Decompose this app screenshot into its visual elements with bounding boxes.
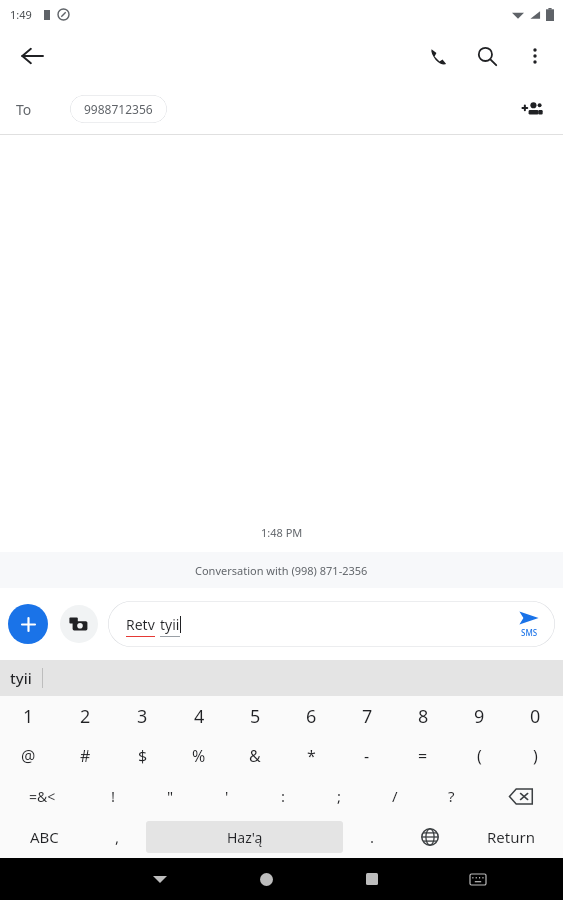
- button[interactable]: Recents: [319, 858, 425, 900]
- staticText: To: [16, 100, 32, 119]
- staticText: Return: [487, 827, 535, 847]
- button[interactable]: More options: [511, 32, 559, 80]
- staticText: Retv: [126, 615, 155, 634]
- staticText: /: [392, 786, 398, 806]
- button[interactable]: Search: [463, 32, 511, 80]
- staticText: SMS: [521, 627, 538, 638]
- staticText: ): [533, 745, 538, 767]
- button[interactable]: Return: [459, 816, 563, 858]
- button[interactable]: 6: [283, 696, 339, 736]
- button[interactable]: !: [85, 776, 142, 816]
- staticText: Haz'ą: [227, 828, 263, 847]
- staticText: *: [307, 745, 316, 767]
- button[interactable]: %: [171, 736, 227, 776]
- staticText: 1:48 PM: [261, 525, 303, 540]
- button[interactable]: Retv: [108, 601, 555, 647]
- staticText: #: [80, 745, 91, 767]
- button[interactable]: $: [114, 736, 171, 776]
- button[interactable]: /: [367, 776, 423, 816]
- staticText: $: [138, 745, 148, 767]
- button[interactable]: (: [451, 736, 507, 776]
- staticText: :: [281, 786, 286, 806]
- button[interactable]: Add people: [511, 87, 555, 131]
- staticText: 9: [474, 704, 485, 729]
- staticText: @: [21, 745, 36, 767]
- button[interactable]: Add attachment: [8, 604, 48, 644]
- button[interactable]: ABC: [0, 816, 88, 858]
- button[interactable]: ?: [423, 776, 479, 816]
- button[interactable]: 0: [507, 696, 563, 736]
- button[interactable]: .: [343, 816, 401, 858]
- button[interactable]: =&<: [0, 776, 85, 816]
- button[interactable]: Home: [213, 858, 319, 900]
- button[interactable]: 8: [395, 696, 451, 736]
- button[interactable]: *: [283, 736, 339, 776]
- button[interactable]: 4: [171, 696, 227, 736]
- staticText: !: [111, 786, 116, 806]
- button[interactable]: =: [395, 736, 451, 776]
- staticText: (: [477, 745, 482, 767]
- button[interactable]: ': [199, 776, 255, 816]
- staticText: ABC: [30, 827, 59, 847]
- button[interactable]: 9: [451, 696, 507, 736]
- staticText: 9988712356: [84, 101, 153, 117]
- staticText: Conversation with (998) 871-2356: [195, 563, 368, 578]
- staticText: .: [370, 827, 375, 847]
- button[interactable]: Send SMS: [519, 610, 539, 638]
- staticText: 5: [250, 704, 261, 729]
- button[interactable]: Backspace: [479, 776, 563, 816]
- staticText: 6: [306, 704, 317, 729]
- staticText: =&<: [29, 787, 56, 806]
- button[interactable]: ): [507, 736, 563, 776]
- button[interactable]: tyii: [0, 660, 42, 696]
- staticText: tyii: [160, 615, 180, 634]
- staticText: ": [167, 786, 174, 806]
- staticText: ?: [448, 786, 455, 806]
- button[interactable]: #: [57, 736, 114, 776]
- staticText: 1:49: [10, 7, 32, 22]
- staticText: 1: [23, 704, 34, 729]
- button[interactable]: -: [339, 736, 395, 776]
- staticText: ,: [115, 827, 120, 847]
- button[interactable]: ": [142, 776, 199, 816]
- button[interactable]: 3: [114, 696, 171, 736]
- button[interactable]: ,: [88, 816, 146, 858]
- button[interactable]: 7: [339, 696, 395, 736]
- staticText: tyii: [10, 668, 32, 688]
- button[interactable]: Back: [8, 32, 56, 80]
- button[interactable]: ;: [311, 776, 367, 816]
- button[interactable]: Change language: [401, 816, 459, 858]
- button[interactable]: Call: [415, 32, 463, 80]
- button[interactable]: 1: [0, 696, 57, 736]
- button[interactable]: 2: [57, 696, 114, 736]
- staticText: =: [418, 745, 428, 767]
- staticText: 4: [194, 704, 205, 729]
- button[interactable]: &: [227, 736, 283, 776]
- button[interactable]: 5: [227, 696, 283, 736]
- staticText: ': [225, 786, 229, 806]
- staticText: ;: [337, 786, 342, 806]
- button[interactable]: Switch keyboard: [425, 858, 531, 900]
- button[interactable]: Camera: [60, 605, 98, 643]
- staticText: &: [249, 745, 261, 767]
- button[interactable]: Haz'ą: [146, 821, 343, 853]
- button[interactable]: 9988712356: [70, 95, 167, 123]
- staticText: 7: [362, 704, 373, 729]
- staticText: 3: [137, 704, 148, 729]
- button[interactable]: :: [255, 776, 311, 816]
- staticText: -: [364, 745, 370, 767]
- button[interactable]: Hide keyboard: [107, 858, 213, 900]
- staticText: %: [192, 745, 206, 767]
- staticText: 0: [530, 704, 541, 729]
- staticText: 8: [418, 704, 429, 729]
- button[interactable]: @: [0, 736, 57, 776]
- staticText: 2: [80, 704, 91, 729]
